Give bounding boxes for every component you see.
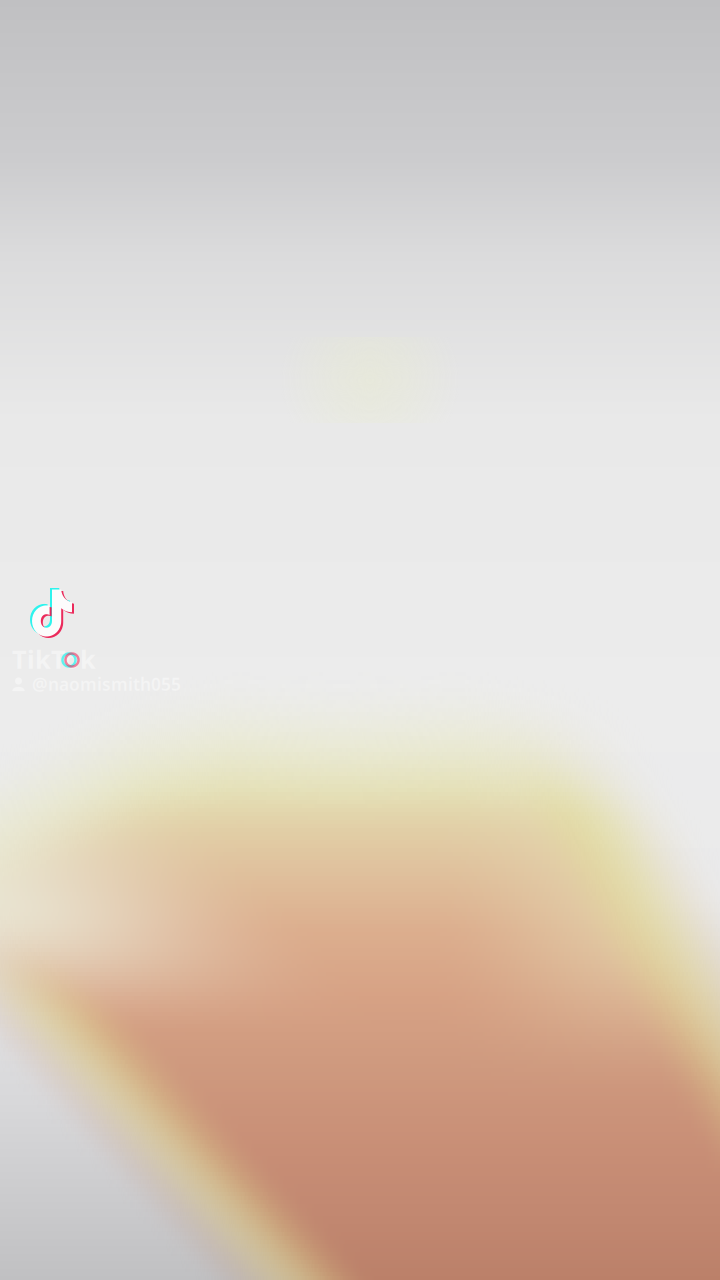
staticText: TikTok	[12, 642, 96, 676]
